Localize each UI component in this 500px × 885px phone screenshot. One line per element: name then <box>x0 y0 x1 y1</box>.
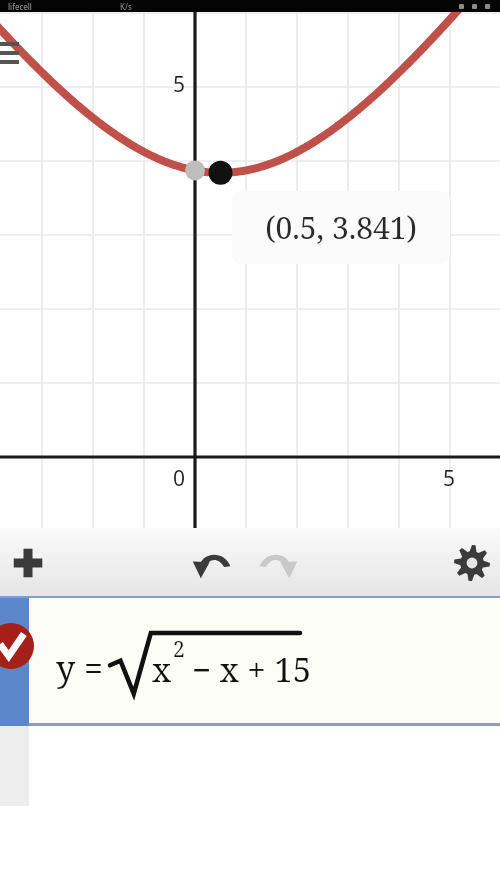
staticText: 5 <box>443 464 456 493</box>
button[interactable]: Redo <box>250 535 306 591</box>
staticText: (0.5, 3.841) <box>265 207 417 248</box>
staticText: K/s <box>120 1 132 12</box>
staticText: 5 <box>173 70 186 99</box>
staticText: lifecell <box>8 1 32 12</box>
button[interactable]: Menu <box>0 38 34 72</box>
button[interactable]: y = <box>0 598 500 726</box>
staticText: 0 <box>173 464 186 493</box>
staticText: y = <box>56 645 104 691</box>
button[interactable]: (0.5, 3.841) <box>232 191 450 264</box>
staticText: − x + 15 <box>192 647 312 692</box>
button[interactable]: Add expression <box>0 535 56 591</box>
button[interactable]: Settings <box>444 535 500 591</box>
button[interactable]: Undo <box>184 535 240 591</box>
staticText: 2 <box>173 635 185 664</box>
staticText: x <box>152 647 172 692</box>
